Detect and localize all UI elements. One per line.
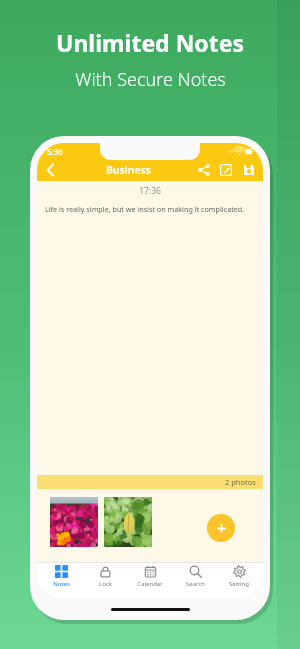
staticText: Search — [186, 580, 205, 588]
staticText: Life is really simple, but we insist on … — [45, 204, 255, 214]
staticText: Unlimited Notes — [56, 27, 244, 58]
staticText: Business — [106, 163, 151, 177]
button[interactable]: Calendar — [129, 565, 171, 598]
button[interactable] — [104, 497, 152, 547]
staticText: With Secure Notes — [75, 67, 226, 92]
button[interactable]: Back — [37, 159, 63, 181]
button[interactable]: Save — [237, 159, 261, 181]
staticText: Setting — [229, 580, 249, 588]
staticText: 2 photos — [225, 477, 256, 487]
button[interactable]: Setting — [218, 565, 260, 598]
button[interactable]: Notes — [40, 565, 82, 598]
staticText: 17:36 — [37, 185, 263, 197]
button[interactable]: Lock — [84, 565, 126, 598]
staticText: Lock — [99, 580, 112, 588]
button[interactable] — [50, 497, 98, 547]
staticText: 5:36 — [47, 146, 63, 157]
staticText: Notes — [53, 580, 70, 588]
button[interactable]: Search — [174, 565, 216, 598]
button[interactable]: Edit — [215, 159, 237, 181]
button[interactable]: Add — [207, 514, 235, 542]
staticText: Calendar — [137, 580, 163, 588]
button[interactable]: Share — [193, 159, 215, 181]
